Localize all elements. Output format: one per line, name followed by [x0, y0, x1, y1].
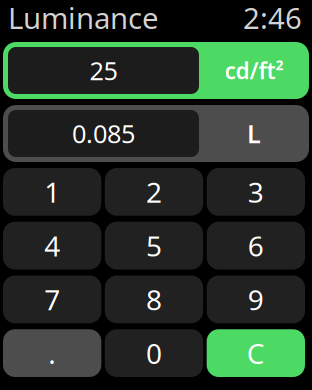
staticText: 5: [146, 227, 162, 264]
button[interactable]: 1: [3, 168, 101, 216]
staticText: 7: [44, 281, 60, 318]
button[interactable]: 9: [207, 275, 305, 323]
button[interactable]: 0: [105, 329, 203, 377]
staticText: 2:46: [243, 0, 302, 37]
button[interactable]: .: [3, 329, 101, 377]
button[interactable]: 7: [3, 275, 101, 323]
button[interactable]: 5: [105, 222, 203, 270]
button[interactable]: 2: [105, 168, 203, 216]
button[interactable]: 3: [207, 168, 305, 216]
button[interactable]: 0.085: [3, 105, 309, 162]
staticText: 4: [44, 227, 60, 264]
button[interactable]: 8: [105, 275, 203, 323]
staticText: 6: [248, 227, 264, 264]
staticText: 25: [89, 54, 117, 87]
staticText: Luminance: [8, 0, 159, 37]
button[interactable]: 6: [207, 222, 305, 270]
staticText: 0.085: [72, 117, 135, 150]
staticText: 0: [146, 334, 162, 372]
staticText: L: [247, 117, 261, 150]
button[interactable]: 4: [3, 222, 101, 270]
staticText: .: [48, 334, 56, 372]
button[interactable]: 25: [3, 42, 309, 99]
staticText: C: [247, 334, 265, 372]
staticText: 8: [146, 281, 162, 318]
staticText: 3: [248, 173, 264, 210]
staticText: 2: [146, 173, 162, 210]
staticText: 9: [248, 281, 264, 318]
staticText: 1: [44, 173, 60, 210]
button[interactable]: C: [207, 329, 305, 377]
staticText: cd/ft²: [224, 55, 283, 85]
